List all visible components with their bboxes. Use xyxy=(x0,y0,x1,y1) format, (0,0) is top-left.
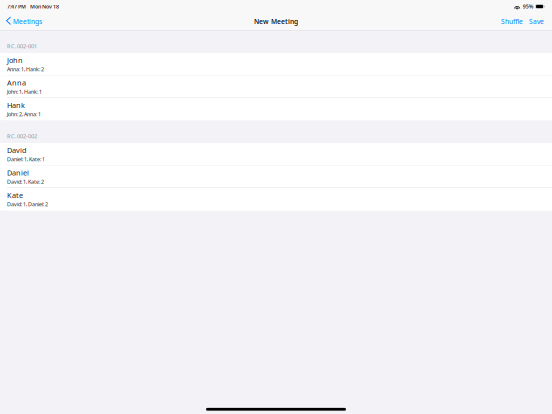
staticText: Anna xyxy=(7,78,26,88)
staticText: Daniel: 1, Kate: 1 xyxy=(7,156,45,163)
button[interactable]: John xyxy=(0,53,552,75)
button[interactable]: Daniel xyxy=(0,165,552,188)
staticText: David: 1, Daniel: 2 xyxy=(7,201,48,208)
button[interactable]: Hank xyxy=(0,98,552,120)
staticText: RC.002-002 xyxy=(7,132,37,140)
staticText: Save xyxy=(529,17,544,26)
staticText: David: 1, Kate: 2 xyxy=(7,178,44,185)
button[interactable]: David xyxy=(0,143,552,165)
staticText: 7:47 PM xyxy=(7,3,26,10)
button[interactable]: Save xyxy=(526,13,552,30)
staticText: Daniel xyxy=(7,168,29,178)
staticText: Kate xyxy=(7,190,23,200)
staticText: New Meeting xyxy=(254,17,298,26)
button[interactable]: Anna xyxy=(0,75,552,98)
staticText: 95% xyxy=(523,3,534,10)
staticText: Hank xyxy=(7,100,25,110)
button[interactable]: Meetings xyxy=(0,13,47,30)
staticText: John: 2, Anna: 1 xyxy=(7,111,41,118)
staticText: John xyxy=(7,55,23,65)
staticText: John: 1, Hank: 1 xyxy=(7,88,42,95)
button[interactable]: Shuffle xyxy=(498,13,526,30)
button[interactable]: Kate xyxy=(0,188,552,210)
staticText: David xyxy=(7,145,27,155)
staticText: Anna: 1, Hank: 2 xyxy=(7,66,44,73)
staticText: Meetings xyxy=(13,17,42,26)
staticText: Shuffle xyxy=(501,17,523,26)
staticText: Mon Nov 18 xyxy=(30,3,59,10)
staticText: RC.002-001 xyxy=(7,42,37,50)
